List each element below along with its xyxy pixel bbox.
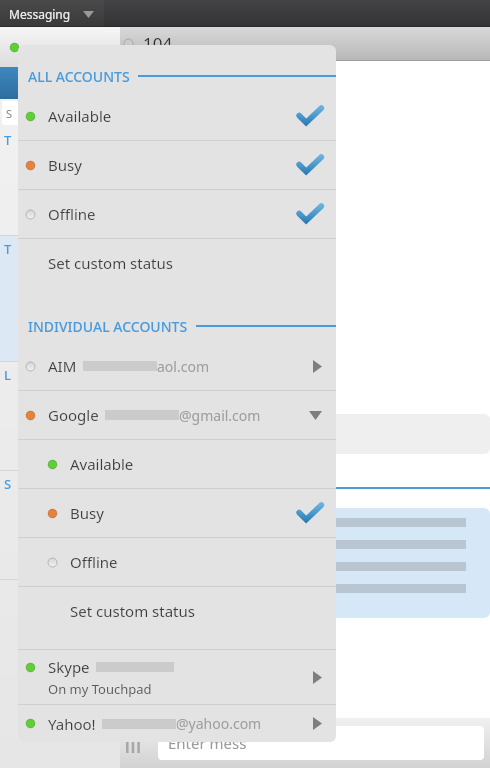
staticText: Offline: [70, 552, 118, 572]
staticText: Skype: [48, 657, 90, 677]
staticText: T: [4, 240, 12, 258]
staticText: L: [4, 366, 11, 384]
button[interactable]: [0, 27, 120, 67]
other: Selected: [298, 156, 322, 174]
other: Selected: [298, 504, 322, 522]
staticText: INDIVIDUAL ACCOUNTS: [28, 317, 188, 336]
button[interactable]: Available: [18, 92, 336, 140]
staticText: AIM: [48, 356, 77, 376]
button[interactable]: Busy: [18, 489, 336, 537]
staticText: Google: [48, 405, 99, 425]
staticText: Available: [48, 106, 112, 126]
staticText: aol.com: [157, 357, 209, 376]
staticText: On my Touchpad: [48, 680, 152, 698]
staticText: Set custom status: [70, 601, 195, 621]
button[interactable]: Yahoo!: [18, 705, 336, 742]
other: Expand: [313, 360, 322, 373]
staticText: Offline: [48, 204, 96, 224]
other: Selected: [298, 107, 322, 125]
button[interactable]: S: [2, 101, 118, 125]
staticText: S: [6, 106, 13, 121]
other: Collapse: [309, 411, 322, 420]
staticText: Yahoo!: [48, 714, 96, 734]
staticText: Available: [70, 454, 134, 474]
staticText: 104: [143, 32, 173, 55]
button[interactable]: [0, 67, 120, 99]
other: Expand: [313, 671, 322, 684]
staticText: Messaging: [9, 6, 71, 22]
button[interactable]: Busy: [18, 141, 336, 189]
staticText: Busy: [48, 155, 82, 175]
button[interactable]: T: [0, 236, 120, 361]
button[interactable]: Available: [18, 440, 336, 488]
other: Expand: [313, 717, 322, 730]
staticText: Set custom status: [48, 253, 173, 273]
button[interactable]: S: [0, 471, 120, 579]
staticText: 104, 10/21/11: [174, 480, 252, 496]
button[interactable]: L: [0, 362, 120, 470]
staticText: @yahoo.com: [176, 714, 262, 733]
staticText: Busy: [70, 503, 104, 523]
staticText: @gmail.com: [179, 406, 261, 425]
button[interactable]: Offline: [18, 538, 336, 586]
staticText: S: [4, 475, 12, 493]
staticText: 1:09 PM: [186, 596, 232, 612]
button[interactable]: Set custom status: [18, 239, 336, 296]
other: Drag handle: [126, 733, 144, 753]
button[interactable]: Set custom status: [18, 587, 336, 649]
staticText: Enter mess: [168, 733, 247, 753]
button[interactable]: T: [0, 127, 120, 235]
staticText: ALL ACCOUNTS: [28, 67, 130, 86]
button[interactable]: Skype: [18, 650, 336, 704]
button[interactable]: Enter mess: [158, 726, 484, 760]
button[interactable]: Offline: [18, 190, 336, 238]
button[interactable]: AIM: [18, 342, 336, 390]
button[interactable]: Google: [18, 391, 336, 439]
button[interactable]: Messaging: [0, 0, 104, 27]
other: Selected: [298, 205, 322, 223]
staticText: T: [4, 131, 12, 149]
